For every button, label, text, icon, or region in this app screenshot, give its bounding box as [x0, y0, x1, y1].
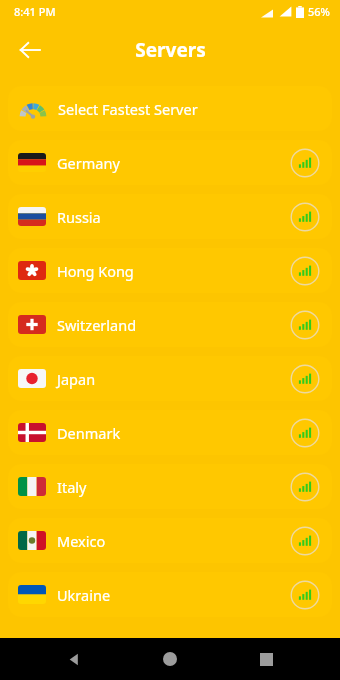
other: Signal strength — [290, 148, 320, 178]
button[interactable]: Denmark — [8, 410, 332, 455]
button[interactable]: Back — [8, 28, 52, 72]
button[interactable]: Mexico — [8, 518, 332, 563]
other: Signal strength — [290, 580, 320, 610]
staticText: Servers — [135, 37, 206, 63]
staticText: Russia — [57, 207, 290, 227]
other: Signal strength — [290, 418, 320, 448]
other: Signal strength — [290, 364, 320, 394]
button[interactable]: Switzerland — [8, 302, 332, 347]
other: Signal strength — [290, 202, 320, 232]
button[interactable]: Home — [148, 638, 192, 680]
staticText: Japan — [57, 369, 290, 389]
button[interactable]: Recents — [244, 638, 288, 680]
button[interactable]: Germany — [8, 140, 332, 185]
button[interactable]: Select Fastest Server — [8, 86, 332, 131]
other: Signal strength — [290, 310, 320, 340]
staticText: Select Fastest Server — [58, 99, 198, 119]
other: Signal strength — [290, 526, 320, 556]
button[interactable]: Ukraine — [8, 572, 332, 617]
other: Signal strength — [290, 472, 320, 502]
staticText: Hong Kong — [57, 261, 290, 281]
staticText: 8:41 PM — [14, 4, 56, 19]
staticText: Ukraine — [57, 585, 290, 605]
staticText: Denmark — [57, 423, 290, 443]
button[interactable]: Russia — [8, 194, 332, 239]
staticText: Switzerland — [57, 315, 290, 335]
button[interactable]: Italy — [8, 464, 332, 509]
staticText: 56% — [308, 4, 330, 19]
button[interactable]: Hong Kong — [8, 248, 332, 293]
button[interactable]: Japan — [8, 356, 332, 401]
button[interactable]: Back — [52, 638, 96, 680]
staticText: Mexico — [57, 531, 290, 551]
staticText: Germany — [57, 153, 290, 173]
staticText: Italy — [57, 477, 290, 497]
other: Signal strength — [290, 256, 320, 286]
